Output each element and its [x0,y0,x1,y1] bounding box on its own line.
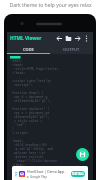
staticText: <html> [11,59,23,63]
staticText: etElementById("p1"); [14,99,52,103]
button[interactable]: Back [55,34,64,43]
staticText: var d = document.g [14,95,48,99]
staticText: <body> [12,139,24,143]
button[interactable]: HtmlChart | Demo App - Create [12,166,88,180]
staticText: welcome here.</p> [14,151,46,155]
staticText: INSTALL [72,172,85,176]
button[interactable]: Forward [73,34,82,43]
staticText: <h2>A heading</h2> [14,143,48,147]
staticText: function show() { [12,91,44,95]
staticText: <script type="text/ja [12,79,51,83]
staticText: } [12,127,14,131]
staticText: Dark theme to help your eyes relax [0,2,101,9]
staticText: <head> [12,63,24,67]
staticText: </body> [12,163,25,167]
staticText: HTML Viewer [10,35,42,42]
button[interactable]: INSTALL [71,171,85,177]
staticText: function explain() { [12,107,50,111]
staticText: HtmlChart | Demo App - Create [27,169,71,174]
staticText: CODE [23,47,34,52]
staticText: OUTPUT [63,47,80,52]
staticText: Google Play [30,175,47,179]
button[interactable]: Save [76,148,89,161]
staticText: tElementById("p2"); [14,115,50,119]
staticText: "red"; [15,123,27,127]
staticText: x.style.color = [14,119,42,123]
staticText: </head> [12,71,25,75]
button[interactable]: More options [82,34,91,43]
staticText: <button onclick= [14,155,44,159]
button[interactable]: Open file [64,34,73,43]
staticText: </script> [12,131,29,135]
button[interactable]: OUTPUT [50,44,93,54]
staticText: <p id="p1">Hello, and [14,147,53,151]
staticText: vascript"> [14,83,33,87]
staticText: var x = document.ge [14,111,50,115]
button[interactable]: CODE [7,44,50,54]
staticText: "show()">Click</button> [15,159,58,163]
staticText: <title>HTML Page</title> [14,67,59,71]
staticText: </html> [11,167,24,171]
